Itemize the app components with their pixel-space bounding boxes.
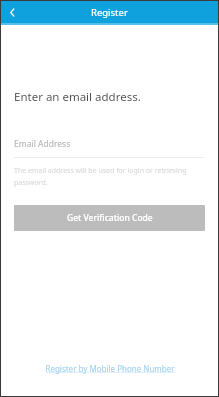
- staticText: Enter an email address.: [14, 89, 141, 105]
- staticText: The email address will be used for login…: [14, 166, 205, 187]
- button[interactable]: Email Address: [14, 138, 205, 158]
- staticText: Get Verification Code: [67, 212, 153, 224]
- staticText: Register by Mobile Phone Number: [45, 363, 175, 374]
- button[interactable]: Get Verification Code: [14, 205, 205, 231]
- staticText: Email Address: [14, 138, 71, 150]
- button[interactable]: Back: [1, 1, 23, 23]
- button[interactable]: Register by Mobile Phone Number: [45, 363, 175, 374]
- staticText: Register: [91, 6, 128, 19]
